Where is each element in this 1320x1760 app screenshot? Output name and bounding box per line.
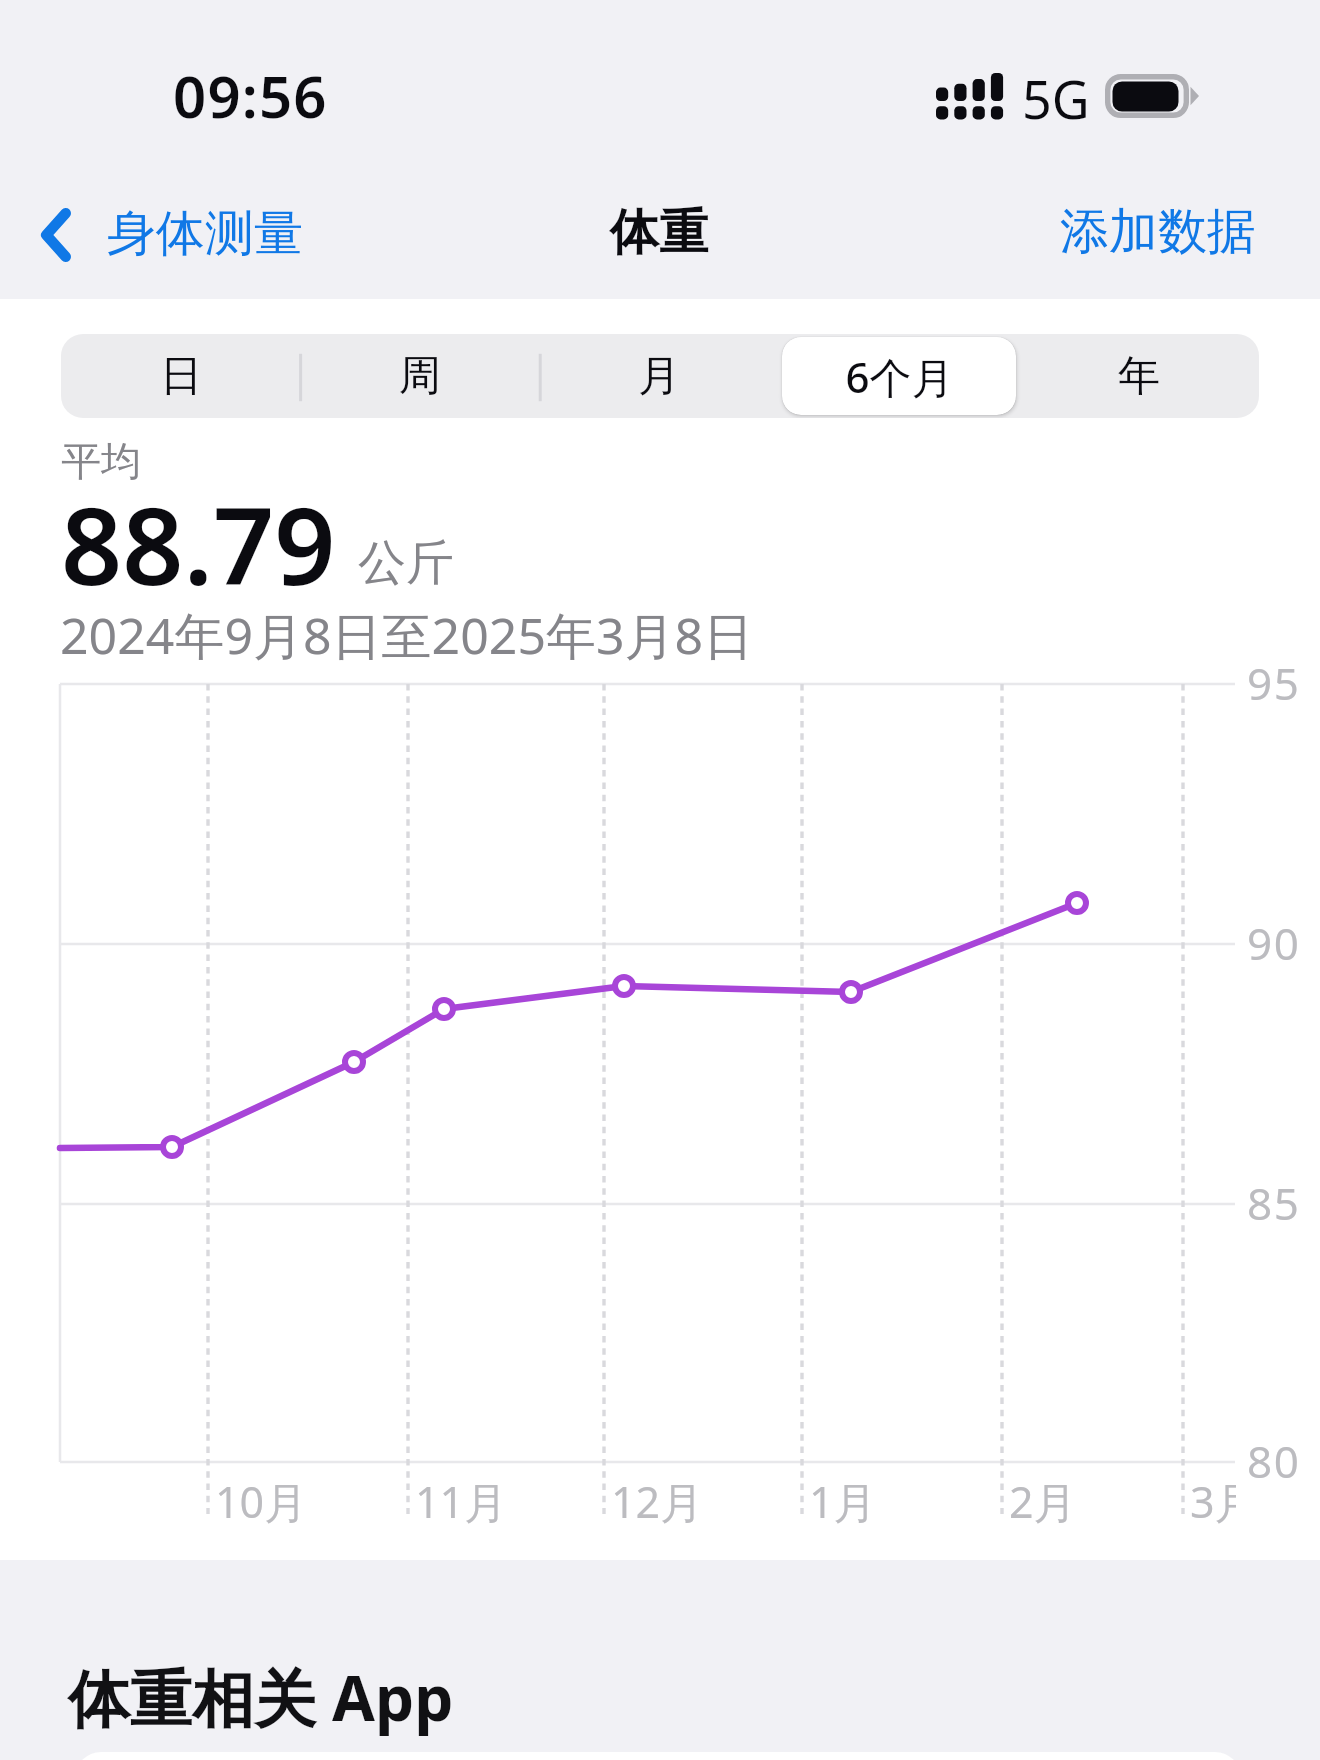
staticText: 公斤 [358,533,454,593]
staticText: 2月 [1009,1472,1077,1531]
staticText: 09:56 [173,56,328,135]
staticText: 3月 [1190,1472,1236,1531]
button[interactable]: 6个月 [782,337,1016,415]
staticText: 6个月 [845,348,954,405]
staticText: 1月 [809,1472,877,1531]
staticText: 年 [1118,350,1160,403]
staticText: 体重 [610,202,708,264]
staticText: 10月 [215,1472,308,1531]
staticText: 2024年9月8日至2025年3月8日 [60,601,754,669]
staticText: 日 [160,350,202,403]
staticText: 添加数据 [1060,201,1256,263]
staticText: 身体测量 [107,203,303,265]
staticText: 88.79 [61,471,336,617]
button[interactable]: 周 [303,337,536,415]
staticText: 95 [1247,653,1301,713]
button[interactable]: Back [41,190,303,274]
staticText: 周 [399,350,441,403]
button[interactable]: 添加数据 [1045,191,1270,273]
staticText: 体重相关 App [68,1655,454,1740]
button[interactable]: 日 [64,337,297,415]
staticText: 11月 [415,1472,508,1531]
button[interactable]: 月 [542,337,776,415]
other: Back [41,208,71,262]
staticText: 月 [638,350,680,403]
staticText: 85 [1247,1173,1301,1233]
staticText: 12月 [611,1472,704,1531]
staticText: 平均 [61,436,141,486]
staticText: 90 [1247,913,1301,973]
staticText: 5G [1022,63,1090,134]
staticText: 80 [1247,1431,1301,1491]
button[interactable]: 年 [1022,337,1256,415]
